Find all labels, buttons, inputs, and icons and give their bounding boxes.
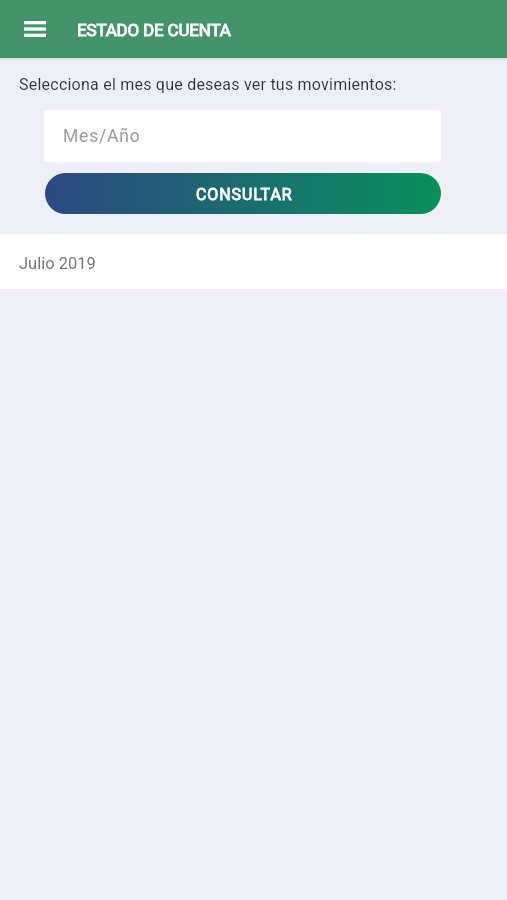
staticText: Julio 2019 <box>19 254 96 273</box>
staticText: CONSULTAR <box>196 185 293 204</box>
button[interactable]: Open navigation menu <box>12 11 58 47</box>
staticText: Mes/Año <box>63 126 141 147</box>
button[interactable]: Mes/Año <box>44 110 441 162</box>
staticText: ESTADO DE CUENTA <box>77 20 231 40</box>
staticText: Selecciona el mes que deseas ver tus mov… <box>19 75 397 94</box>
button[interactable]: CONSULTAR <box>45 173 441 214</box>
button[interactable]: Julio 2019 <box>0 234 507 289</box>
